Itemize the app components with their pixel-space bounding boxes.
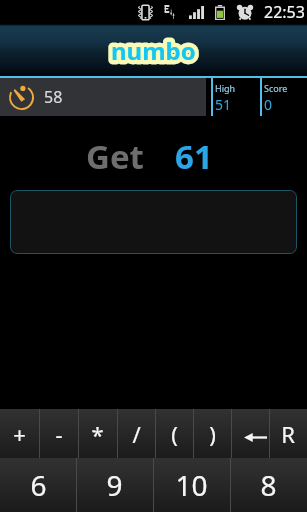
staticText: 58 bbox=[44, 86, 63, 108]
staticText: ( bbox=[171, 419, 178, 449]
other: Timer bbox=[9, 85, 34, 110]
staticText: 9 bbox=[106, 466, 123, 504]
staticText: / bbox=[132, 419, 141, 449]
staticText: 6 bbox=[30, 466, 47, 504]
staticText: numbo bbox=[111, 34, 196, 67]
staticText: 0 bbox=[264, 95, 273, 114]
staticText: 51 bbox=[215, 95, 232, 114]
other: Vibrate bbox=[135, 5, 156, 20]
button[interactable]: Score bbox=[262, 78, 307, 116]
staticText: 10 bbox=[175, 466, 208, 504]
staticText: + bbox=[13, 419, 26, 449]
button[interactable]: / bbox=[117, 409, 155, 458]
staticText: Get bbox=[86, 134, 144, 179]
staticText: ) bbox=[209, 419, 216, 449]
button[interactable]: ( bbox=[155, 409, 193, 458]
button[interactable]: 10 bbox=[153, 458, 230, 512]
staticText: Score bbox=[264, 82, 288, 94]
staticText: numbo bbox=[111, 34, 196, 67]
button[interactable]: ) bbox=[193, 409, 231, 458]
staticText: - bbox=[55, 419, 63, 449]
staticText: 22:53 bbox=[264, 1, 305, 23]
button[interactable] bbox=[10, 190, 297, 254]
button[interactable]: 8 bbox=[230, 458, 307, 512]
staticText: 8 bbox=[260, 466, 277, 504]
button[interactable]: * bbox=[78, 409, 117, 458]
button[interactable]: R bbox=[269, 409, 307, 458]
button[interactable]: Backspace bbox=[231, 409, 269, 458]
button[interactable]: High bbox=[213, 78, 260, 116]
button[interactable]: - bbox=[39, 409, 78, 458]
staticText: R bbox=[281, 419, 295, 449]
staticText: * bbox=[91, 419, 104, 449]
staticText: 61 bbox=[175, 134, 213, 179]
button[interactable]: 6 bbox=[0, 458, 76, 512]
button[interactable]: + bbox=[0, 409, 39, 458]
button[interactable]: 9 bbox=[76, 458, 153, 512]
staticText: High bbox=[215, 82, 236, 94]
